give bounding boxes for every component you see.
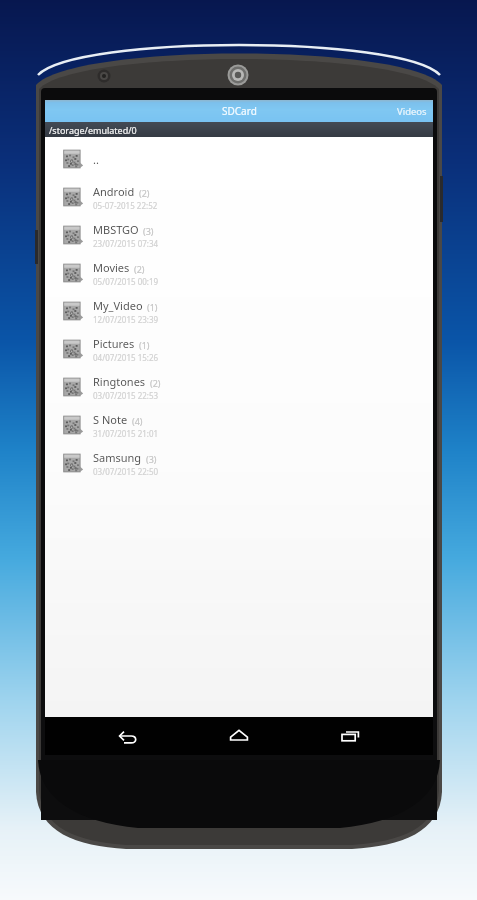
staticText: 12/07/2015 23:39 [93,314,159,325]
other: Folder [62,452,84,474]
staticText: My_Video [93,298,143,313]
button[interactable]: Home [211,717,267,755]
staticText: 05-07-2015 22:52 [93,200,158,211]
button[interactable]: Folder [45,140,433,178]
staticText: Movies [93,260,130,275]
button[interactable]: Folder [45,406,433,444]
staticText: 31/07/2015 21:01 [93,428,159,439]
staticText: (3) [146,453,157,465]
button[interactable]: Folder [45,444,433,482]
staticText: Pictures [93,336,135,351]
staticText: (2) [150,377,161,389]
staticText: MBSTGO [93,222,139,237]
button[interactable]: Folder [45,292,433,330]
button[interactable]: Recents [322,717,378,755]
button[interactable]: Folder [45,330,433,368]
other: Folder [62,186,84,208]
staticText: 03/07/2015 22:53 [93,390,159,401]
other: Folder [62,414,84,436]
staticText: 23/07/2015 07:34 [93,238,159,249]
staticText: S Note [93,412,128,427]
button[interactable]: Folder [45,178,433,216]
staticText: (1) [147,301,158,313]
staticText: /storage/emulated/0 [49,124,137,136]
other: Folder [62,262,84,284]
staticText: 03/07/2015 22:50 [93,466,159,477]
staticText: Videos [397,105,427,118]
button[interactable]: Folder [45,216,433,254]
staticText: (3) [143,225,154,237]
staticText: 04/07/2015 15:26 [93,352,159,363]
other: Folder [62,338,84,360]
staticText: Ringtones [93,374,146,389]
staticText: (2) [139,187,150,199]
staticText: (1) [139,339,150,351]
button[interactable]: Back [100,717,156,755]
button[interactable]: Folder [45,254,433,292]
button[interactable]: Videos [391,100,433,122]
other: Folder [62,224,84,246]
staticText: Android [93,184,135,199]
other: Folder [62,300,84,322]
staticText: (2) [134,263,145,275]
staticText: Samsung [93,450,142,465]
staticText: .. [93,152,99,167]
button[interactable]: /storage/emulated/0 [45,122,433,137]
staticText: SDCard [222,104,257,118]
other: Folder [62,148,84,170]
other: Folder [62,376,84,398]
staticText: (4) [132,415,143,427]
staticText: 05/07/2015 00:19 [93,276,159,287]
button[interactable]: Folder [45,368,433,406]
